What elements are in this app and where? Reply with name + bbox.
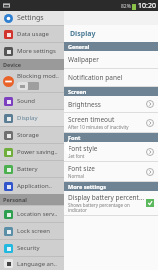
staticText: Notification panel — [68, 73, 123, 82]
button[interactable]: Settings — [0, 11, 64, 25]
button[interactable]: Display battery percenta.. — [64, 191, 158, 216]
staticText: After 10 minutes of inactivity — [68, 124, 129, 130]
button[interactable]: Power saving.. — [0, 144, 64, 160]
other: Checked — [146, 199, 154, 207]
staticText: Display — [70, 29, 96, 39]
button[interactable]: Brightness — [64, 96, 158, 113]
staticText: Battery — [17, 165, 38, 173]
staticText: Shows battery percentage on indicator — [68, 202, 146, 213]
button[interactable]: Security — [0, 240, 64, 256]
staticText: More settings — [68, 183, 106, 190]
button[interactable]: Data usage — [0, 26, 64, 42]
button[interactable]: Location serv.. — [0, 206, 64, 222]
staticText: Lock screen — [17, 227, 51, 235]
button[interactable]: Font style — [64, 142, 158, 162]
staticText: Font — [68, 134, 81, 141]
staticText: Display — [17, 114, 38, 122]
button[interactable]: Blocking mod.. — [0, 70, 64, 92]
button[interactable]: Lock screen — [0, 223, 64, 239]
staticText: Location serv.. — [17, 210, 58, 218]
button[interactable]: Notification panel — [64, 69, 158, 87]
staticText: Font size — [68, 164, 95, 173]
staticText: Language an.. — [17, 260, 57, 268]
staticText: Device — [3, 61, 22, 68]
button[interactable]: Display — [0, 110, 64, 126]
staticText: General — [68, 43, 90, 50]
staticText: Font style — [68, 144, 98, 153]
button[interactable]: Sound — [0, 93, 64, 109]
staticText: Settings — [17, 13, 44, 23]
button[interactable]: Application.. — [0, 178, 64, 194]
staticText: Normal — [68, 173, 84, 179]
staticText: Display battery percenta.. — [68, 193, 146, 202]
button[interactable]: Language an.. — [0, 257, 64, 270]
button[interactable]: Storage — [0, 127, 64, 143]
staticText: More settings — [17, 47, 56, 55]
staticText: Screen timeout — [68, 115, 115, 124]
button[interactable]: Font size — [64, 162, 158, 182]
button[interactable]: Screen timeout — [64, 113, 158, 133]
staticText: Wallpaper — [68, 55, 99, 64]
staticText: Storage — [17, 131, 39, 139]
staticText: Sound — [17, 97, 36, 105]
button[interactable]: More settings — [0, 43, 64, 59]
button[interactable]: Battery — [0, 161, 64, 177]
staticText: Personal — [3, 196, 27, 203]
staticText: Brightness — [68, 100, 101, 109]
staticText: Blocking mod.. — [17, 72, 59, 80]
staticText: Screen — [68, 88, 87, 95]
staticText: Power saving.. — [17, 148, 58, 156]
staticText: Data usage — [17, 30, 49, 38]
staticText: 10:20 — [138, 1, 156, 11]
staticText: Security — [17, 244, 40, 252]
staticText: 82% — [121, 3, 131, 10]
button[interactable]: Wallpaper — [64, 51, 158, 69]
staticText: Application.. — [17, 182, 52, 190]
staticText: Set font — [68, 153, 85, 159]
